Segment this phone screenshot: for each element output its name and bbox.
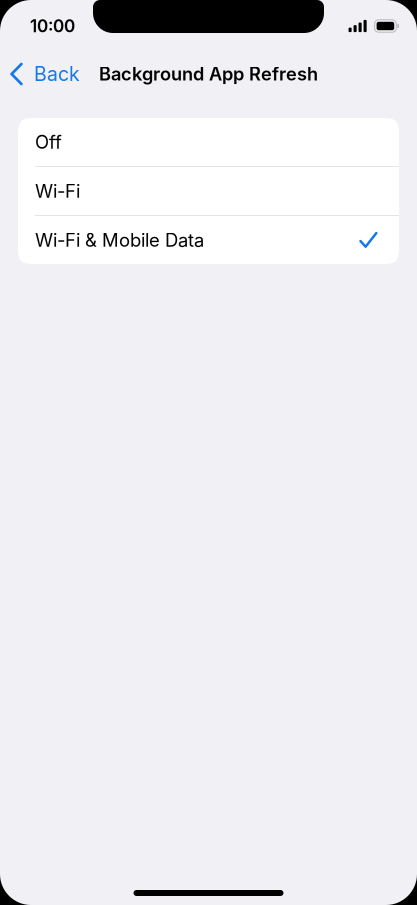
button[interactable]: Back (0, 52, 88, 96)
staticText: Off (35, 131, 62, 153)
button[interactable]: Off (18, 118, 399, 166)
staticText: Wi-Fi (35, 180, 80, 202)
button[interactable]: Wi-Fi (18, 167, 399, 215)
staticText: Background App Refresh (99, 63, 318, 85)
staticText: Back (34, 62, 80, 86)
button[interactable]: Wi-Fi & Mobile Data (18, 216, 399, 264)
staticText: 10:00 (30, 16, 75, 36)
staticText: Wi-Fi & Mobile Data (35, 229, 204, 251)
